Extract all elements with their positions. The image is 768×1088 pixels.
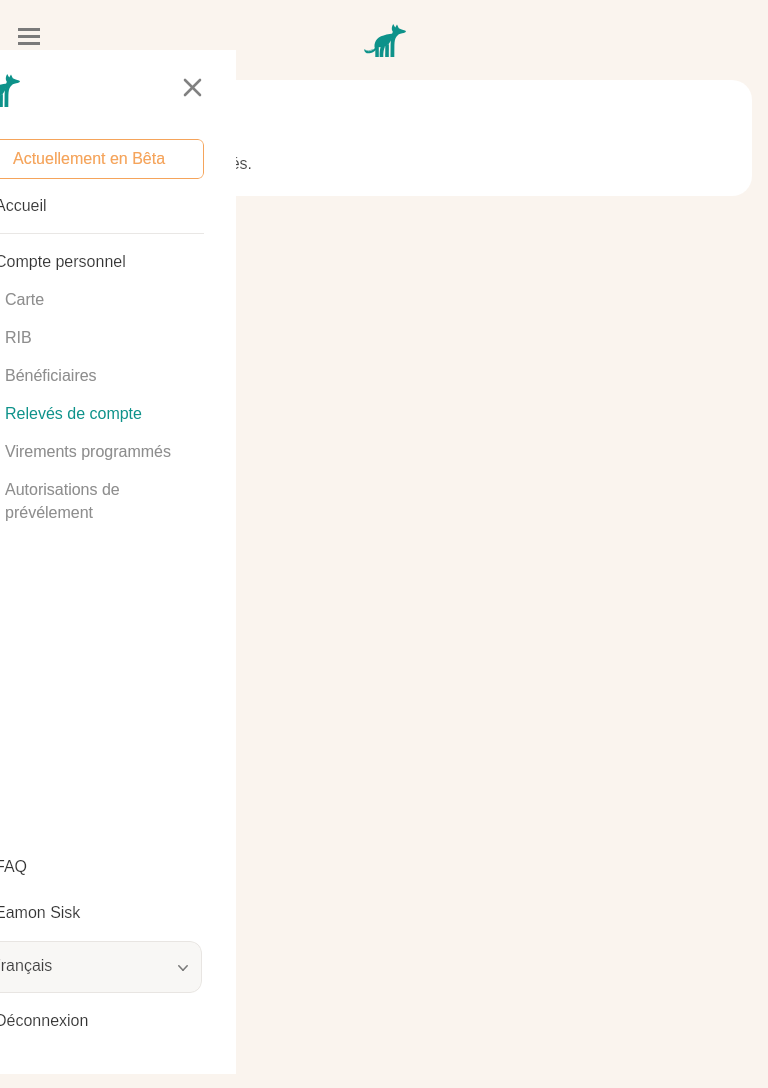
- button[interactable]: Français: [0, 941, 202, 993]
- button[interactable]: Compte personnel: [0, 245, 215, 279]
- button[interactable]: Relevés de compte: [0, 397, 225, 431]
- button[interactable]: RIB: [0, 321, 225, 355]
- staticText: Carte: [5, 291, 45, 309]
- staticText: Compte personnel: [0, 253, 126, 271]
- button[interactable]: Close navigation menu: [176, 71, 208, 103]
- button[interactable]: Autorisations de prévélement: [0, 473, 225, 529]
- staticText: RIB: [5, 329, 32, 347]
- button[interactable]: Accueil: [0, 189, 215, 223]
- button[interactable]: Virements programmés: [0, 435, 225, 469]
- staticText: FAQ: [0, 858, 28, 876]
- button[interactable]: Actuellement en Bêta: [0, 139, 204, 179]
- button[interactable]: Carte: [0, 283, 225, 317]
- staticText: Relevés de compte: [5, 405, 142, 423]
- button[interactable]: Bénéficiaires: [0, 359, 225, 393]
- button[interactable]: Eamon Sisk: [0, 896, 215, 930]
- staticText: Actuellement en Bêta: [13, 150, 166, 168]
- button[interactable]: Déconnexion: [0, 1004, 215, 1038]
- staticText: Bénéficiaires: [5, 367, 97, 385]
- staticText: Autorisations de prévélement: [5, 481, 120, 521]
- button[interactable]: Open navigation menu: [18, 28, 40, 45]
- button[interactable]: Home: [0, 74, 20, 107]
- staticText: Eamon Sisk: [0, 904, 81, 922]
- staticText: Français: [0, 957, 53, 975]
- staticText: Accueil: [0, 197, 47, 215]
- staticText: Il n'y a pas encore de relevés.: [40, 155, 253, 173]
- staticText: Déconnexion: [0, 1012, 89, 1030]
- button[interactable]: FAQ: [0, 850, 215, 884]
- staticText: Virements programmés: [5, 443, 171, 461]
